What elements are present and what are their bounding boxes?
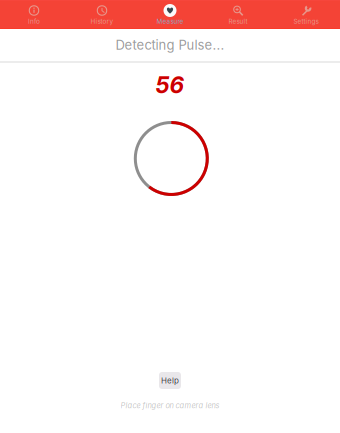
staticText: Info bbox=[28, 18, 40, 25]
staticText: Result bbox=[228, 18, 247, 25]
staticText: Detecting Pulse... bbox=[115, 37, 224, 53]
button[interactable]: Measure bbox=[136, 0, 204, 29]
button[interactable]: Settings bbox=[272, 0, 340, 29]
staticText: Settings bbox=[293, 18, 318, 25]
button[interactable]: Help bbox=[159, 372, 181, 389]
button[interactable]: Result bbox=[204, 0, 272, 29]
button[interactable]: History bbox=[68, 0, 136, 29]
staticText: Help bbox=[161, 376, 179, 385]
staticText: History bbox=[90, 18, 113, 25]
button[interactable]: Info bbox=[0, 0, 68, 29]
staticText: Place finger on camera lens bbox=[120, 401, 219, 410]
staticText: Measure bbox=[156, 18, 183, 25]
staticText: 56 bbox=[155, 71, 184, 99]
